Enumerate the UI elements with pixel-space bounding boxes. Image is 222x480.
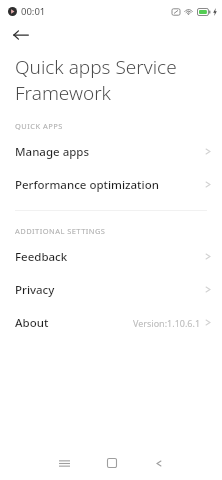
button[interactable]: Home <box>88 446 135 480</box>
staticText: Quick apps Service Framework <box>15 54 177 105</box>
staticText: Manage apps <box>15 144 90 160</box>
staticText: ADDITIONAL SETTINGS <box>15 226 106 236</box>
button[interactable]: Recent apps <box>41 446 88 480</box>
button[interactable]: Privacy <box>0 273 222 306</box>
button[interactable]: Back <box>9 23 33 47</box>
button[interactable]: Back <box>135 446 182 480</box>
button[interactable]: Performance optimization <box>0 168 222 201</box>
staticText: Performance optimization <box>15 177 159 193</box>
staticText: 00:01 <box>21 5 46 18</box>
button[interactable]: About <box>0 306 222 339</box>
staticText: About <box>15 315 49 331</box>
button[interactable]: Feedback <box>0 240 222 273</box>
staticText: Version:1.10.6.1 <box>133 317 201 329</box>
staticText: QUICK APPS <box>15 121 63 131</box>
staticText: Privacy <box>15 282 55 298</box>
staticText: Feedback <box>15 249 68 265</box>
button[interactable]: Manage apps <box>0 135 222 168</box>
